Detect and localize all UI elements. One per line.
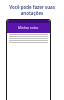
staticText: Minhas notas	[18, 26, 39, 30]
staticText: Você pode fazer suas anotações	[3, 4, 61, 16]
